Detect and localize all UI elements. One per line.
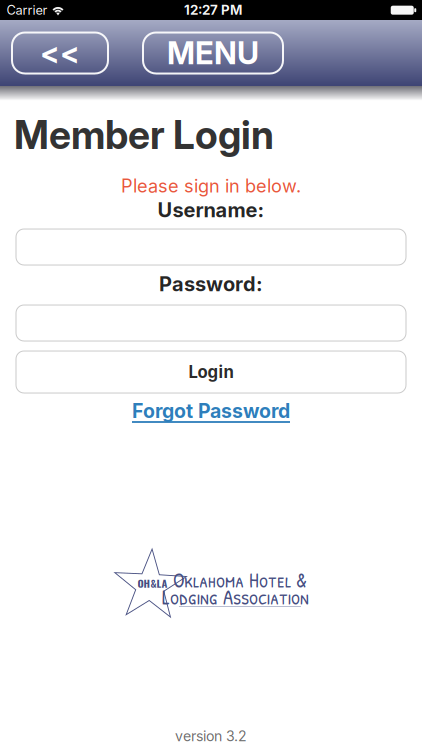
staticText: 12:27 PM [184,2,242,18]
staticText: Username: [157,198,264,222]
staticText: Login [188,362,233,382]
button[interactable]: Forgot Password [132,399,290,423]
staticText: OH&LA [137,575,167,591]
staticText: Carrier [6,2,47,18]
staticText: version 3.2 [175,727,247,744]
staticText: Forgot Password [132,399,290,423]
staticText: Lodging Association [162,583,309,611]
button[interactable]: << [12,32,108,73]
staticText: Please sign in below. [121,175,301,197]
staticText: Oklahoma Hotel & [173,566,307,594]
staticText: Member Login [14,112,274,158]
button[interactable]: Login [16,351,406,393]
staticText: MENU [167,34,259,71]
staticText: Password: [159,272,263,296]
staticText: << [40,35,80,71]
button[interactable]: MENU [143,32,283,73]
